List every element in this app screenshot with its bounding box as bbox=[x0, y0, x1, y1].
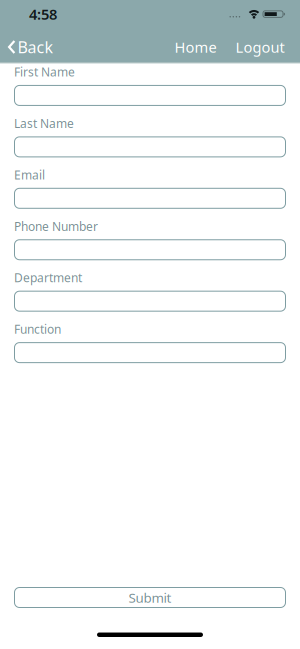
staticText: Submit bbox=[128, 589, 171, 606]
staticText: Function bbox=[14, 321, 61, 337]
staticText: Logout bbox=[235, 37, 284, 57]
staticText: Last Name bbox=[14, 115, 74, 131]
button[interactable]: Email bbox=[14, 188, 286, 209]
staticText: Email bbox=[14, 167, 45, 183]
button[interactable]: Phone Number bbox=[14, 239, 286, 260]
button[interactable]: Logout bbox=[235, 37, 284, 57]
button[interactable]: Last Name bbox=[14, 136, 286, 157]
button[interactable]: Submit bbox=[14, 587, 286, 608]
button[interactable]: Function bbox=[14, 342, 286, 363]
staticText: 4:58 bbox=[29, 4, 57, 24]
staticText: First Name bbox=[14, 64, 75, 80]
staticText: Home bbox=[174, 37, 216, 57]
button[interactable]: First Name bbox=[14, 85, 286, 106]
button[interactable]: Department bbox=[14, 291, 286, 312]
staticText: Phone Number bbox=[14, 218, 98, 234]
button[interactable]: Back bbox=[0, 36, 53, 58]
staticText: Department bbox=[14, 270, 82, 286]
staticText: Back bbox=[17, 36, 53, 58]
button[interactable]: Home bbox=[174, 37, 216, 57]
